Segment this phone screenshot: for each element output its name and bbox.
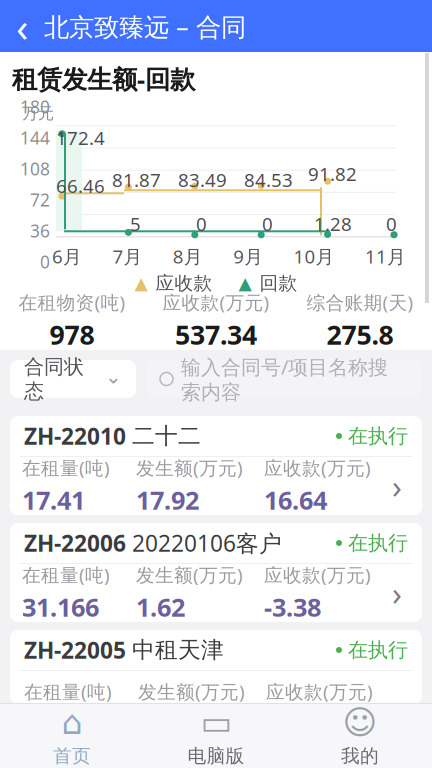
staticText: 综合账期(天): [306, 290, 413, 315]
staticText: ▲: [238, 273, 251, 293]
staticText: 应收款(万元): [162, 290, 269, 315]
button[interactable]: ZH-22005: [10, 630, 422, 704]
staticText: 租赁发生额-回款: [12, 62, 195, 96]
staticText: 0: [262, 211, 273, 236]
staticText: 108: [20, 157, 50, 180]
staticText: 16.64: [264, 483, 327, 517]
staticText: 在租量(吨): [24, 679, 112, 704]
staticText: 172.4: [56, 125, 105, 150]
staticText: 1.28: [314, 211, 352, 236]
staticText: 10月: [294, 244, 335, 269]
staticText: 1.62: [136, 590, 185, 624]
staticText: 66.46: [56, 173, 105, 198]
staticText: ▲: [134, 273, 147, 293]
staticText: 应收款: [155, 272, 212, 295]
staticText: 91.82: [308, 161, 357, 186]
staticText: 5: [130, 211, 141, 236]
staticText: 应收款(万元): [266, 679, 373, 704]
staticText: 万元: [22, 104, 54, 123]
staticText: 应收款(万元): [264, 455, 371, 480]
staticText: 17.41: [22, 483, 85, 517]
staticText: 我的: [341, 744, 379, 767]
staticText: 回款: [259, 272, 297, 295]
button[interactable]: 合同状态: [10, 360, 136, 398]
staticText: 发生额(万元): [136, 562, 243, 587]
staticText: 电脑版: [187, 744, 244, 767]
staticText: 537.34: [175, 317, 257, 352]
staticText: ZH-22010: [24, 421, 126, 451]
staticText: 在租量(吨): [22, 562, 110, 587]
button[interactable]: ▭: [144, 703, 288, 768]
staticText: 0: [196, 211, 207, 236]
staticText: 20220106客户: [132, 528, 282, 558]
staticText: 180: [20, 95, 50, 118]
staticText: -3.38: [264, 590, 321, 624]
staticText: 合同状态: [24, 354, 84, 403]
staticText: 31.166: [22, 590, 99, 624]
staticText: 8月: [173, 244, 203, 269]
button[interactable]: ZH-22010: [10, 416, 422, 515]
staticText: 在租物资(吨): [18, 290, 125, 315]
staticText: 81.87: [112, 167, 161, 192]
staticText: 11月: [365, 244, 406, 269]
staticText: 0: [386, 211, 397, 236]
staticText: 首页: [53, 744, 91, 767]
staticText: ▭: [200, 704, 231, 741]
staticText: ›: [392, 465, 402, 507]
staticText: ⌄: [105, 365, 122, 388]
staticText: 84.53: [244, 167, 293, 192]
staticText: 83.49: [178, 167, 227, 192]
staticText: 发生额(万元): [138, 679, 245, 704]
button[interactable]: Back: [0, 0, 44, 53]
staticText: 72: [30, 188, 50, 211]
staticText: 36: [30, 219, 50, 242]
button[interactable]: ZH-22006: [10, 523, 422, 622]
button[interactable]: ⌂: [0, 703, 144, 768]
staticText: 应收款(万元): [264, 562, 371, 587]
staticText: 输入合同号/项目名称搜索内容: [181, 353, 388, 404]
staticText: 在租量(吨): [22, 455, 110, 480]
staticText: 发生额(万元): [136, 455, 243, 480]
staticText: ☺: [342, 704, 377, 741]
staticText: 6月: [52, 244, 82, 269]
staticText: 在执行: [348, 424, 408, 448]
staticText: 0: [40, 250, 50, 273]
staticText: 在执行: [348, 638, 408, 662]
staticText: 144: [20, 126, 50, 149]
staticText: ZH-22006: [24, 528, 126, 558]
staticText: ZH-22005: [24, 635, 126, 665]
staticText: 北京致臻远 – 合同: [44, 10, 246, 43]
staticText: 9月: [233, 244, 263, 269]
staticText: 275.8: [326, 317, 393, 352]
staticText: ›: [392, 572, 402, 614]
staticText: ⌂: [61, 704, 82, 741]
button[interactable]: 输入合同号/项目名称搜索内容: [146, 360, 422, 398]
staticText: 17.92: [136, 483, 199, 517]
staticText: 在执行: [348, 531, 408, 555]
button[interactable]: ☺: [288, 703, 432, 768]
staticText: 978: [49, 317, 94, 352]
staticText: 二十二: [132, 422, 201, 450]
staticText: 7月: [112, 244, 142, 269]
staticText: 中租天津: [132, 636, 224, 664]
staticText: ‹: [16, 0, 28, 53]
